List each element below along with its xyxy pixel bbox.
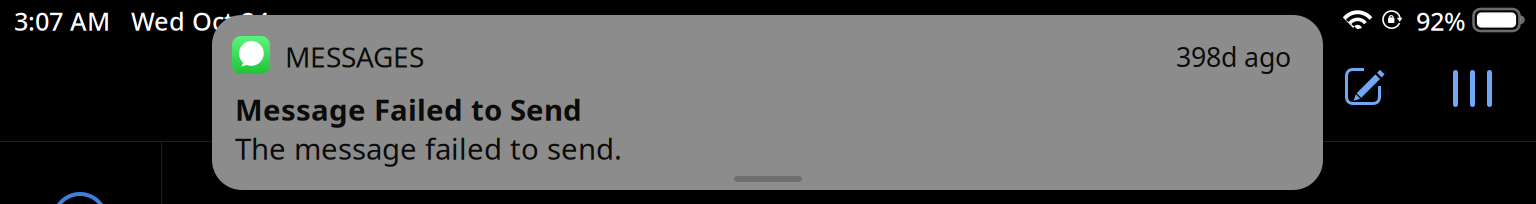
staticText: 3:07 AM (14, 4, 110, 38)
staticText: The message failed to send. (235, 129, 622, 168)
staticText: Wed Oct 24 (131, 4, 269, 38)
staticText: Message Failed to Send (235, 90, 582, 129)
button[interactable]: MESSAGES (212, 15, 1323, 190)
button[interactable]: New Message (1345, 68, 1386, 105)
staticText: 398d ago (1176, 39, 1291, 74)
staticText: MESSAGES (285, 38, 424, 75)
staticText: 92% (1416, 4, 1466, 38)
button[interactable]: Filters (1453, 70, 1492, 107)
